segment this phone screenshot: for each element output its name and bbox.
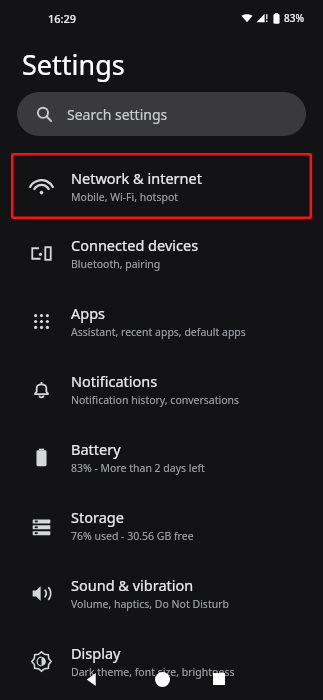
button[interactable]: Apps — [0, 287, 323, 355]
staticText: Assistant, recent apps, default apps — [71, 325, 246, 339]
staticText: Display — [71, 643, 121, 663]
staticText: 76% used - 30.56 GB free — [71, 529, 194, 543]
staticText: Dark theme, font size, brightness — [71, 665, 235, 679]
button[interactable]: Notifications — [0, 355, 323, 423]
staticText: Sound & vibration — [71, 575, 194, 595]
staticText: Settings — [22, 46, 125, 83]
button[interactable]: Search settings — [17, 92, 306, 136]
staticText: Connected devices — [71, 235, 199, 255]
staticText: Battery — [71, 439, 121, 459]
button[interactable]: Display — [0, 627, 323, 695]
staticText: Notification history, conversations — [71, 393, 240, 407]
button[interactable]: Connected devices — [0, 219, 323, 287]
button[interactable]: Battery — [0, 423, 323, 491]
staticText: Network & internet — [71, 168, 202, 188]
button[interactable]: Storage — [0, 491, 323, 559]
staticText: Search settings — [67, 105, 168, 124]
button[interactable]: Home — [147, 664, 177, 694]
staticText: 16:29 — [48, 11, 77, 26]
button[interactable]: Sound & vibration — [0, 559, 323, 627]
staticText: Storage — [71, 507, 124, 527]
button[interactable]: Back — [76, 664, 106, 694]
staticText: 83% - More than 2 days left — [71, 461, 205, 475]
staticText: 83% — [284, 11, 304, 25]
staticText: Mobile, Wi-Fi, hotspot — [71, 190, 179, 204]
button[interactable]: Recent apps — [204, 664, 234, 694]
staticText: Volume, haptics, Do Not Disturb — [71, 597, 229, 611]
staticText: Bluetooth, pairing — [71, 257, 161, 271]
button[interactable]: Network & internet — [11, 153, 312, 219]
staticText: Notifications — [71, 371, 158, 391]
staticText: Apps — [71, 303, 106, 323]
